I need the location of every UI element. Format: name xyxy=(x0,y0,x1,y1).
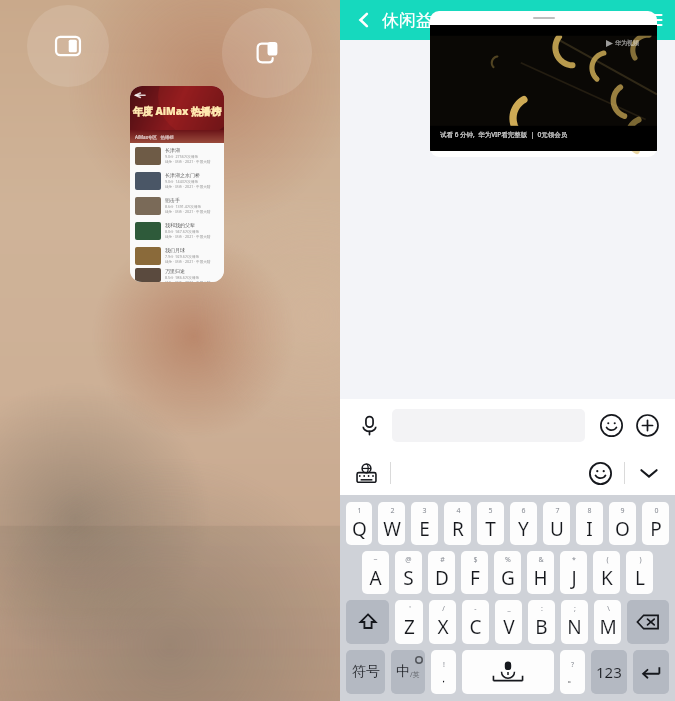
button[interactable]: K xyxy=(593,551,620,594)
staticText: U xyxy=(550,516,564,542)
button[interactable]: Switch keyboard xyxy=(350,457,382,489)
staticText: 6 xyxy=(521,506,526,516)
staticText: # xyxy=(440,555,445,565)
button[interactable]: Q xyxy=(346,502,372,545)
button[interactable]: Z xyxy=(395,600,423,644)
staticText: A xyxy=(369,565,382,591)
button[interactable]: P xyxy=(642,502,669,545)
staticText: ( xyxy=(606,555,609,565)
staticText: 9.0分 1443万次播放 xyxy=(165,179,199,184)
button[interactable]: T xyxy=(477,502,504,545)
staticText: 5 xyxy=(488,506,493,516)
button[interactable]: A xyxy=(362,551,389,594)
button[interactable]: Emoji keyboard xyxy=(584,457,616,489)
staticText: P xyxy=(650,516,662,542)
staticText: Q xyxy=(352,516,367,542)
staticText: 长津湖 xyxy=(165,147,180,153)
staticText: 华为视频 xyxy=(615,39,639,47)
button[interactable]: N xyxy=(561,600,588,644)
staticText: @ xyxy=(405,555,412,565)
staticText: * xyxy=(572,555,576,565)
staticText: 0 xyxy=(654,506,659,516)
staticText: ' xyxy=(409,604,411,614)
staticText: N xyxy=(567,614,582,640)
button[interactable]: M xyxy=(594,600,621,644)
staticText: 1 xyxy=(357,506,362,516)
button[interactable]: X xyxy=(429,600,456,644)
button[interactable]: E xyxy=(411,502,438,545)
staticText: & xyxy=(538,555,544,565)
staticText: ; xyxy=(574,604,576,614)
staticText: Z xyxy=(404,614,415,640)
staticText: 战争 · 历史 · 2021 · 中国大陆 xyxy=(165,184,211,189)
button[interactable]: Y xyxy=(510,502,537,545)
staticText: ! xyxy=(443,660,445,670)
staticText: \ xyxy=(607,604,610,614)
button[interactable]: U xyxy=(543,502,570,545)
staticText: 符号 xyxy=(352,663,380,681)
button[interactable]: O xyxy=(609,502,636,545)
button[interactable]: 中英切换 xyxy=(391,650,425,694)
button[interactable]: V xyxy=(495,600,522,644)
staticText: 狙击手 xyxy=(165,197,180,203)
staticText: X xyxy=(437,614,449,640)
staticText: T xyxy=(485,516,496,542)
button[interactable]: More xyxy=(631,409,663,441)
button[interactable]: L xyxy=(626,551,653,594)
button[interactable]: Voice input xyxy=(352,408,386,442)
button[interactable]: I xyxy=(576,502,603,545)
staticText: 7.9分 929.6万次播放 xyxy=(165,254,200,259)
button[interactable]: Shift xyxy=(346,600,389,644)
staticText: F xyxy=(470,565,480,591)
button[interactable]: Hide keyboard xyxy=(633,457,665,489)
staticText: 。 xyxy=(567,671,578,685)
staticText: K xyxy=(601,565,613,591)
button[interactable]: Space xyxy=(462,650,554,694)
button[interactable]: Back xyxy=(350,6,378,34)
staticText: : xyxy=(541,604,543,614)
staticText: 8.6分 1391.4万次播放 xyxy=(165,204,202,209)
button[interactable]: H xyxy=(527,551,554,594)
button[interactable]: Comma xyxy=(431,650,456,694)
staticText: % xyxy=(505,555,511,565)
button[interactable]: F xyxy=(461,551,488,594)
staticText: 战争 · 历史 · 2021 · 中国大陆 xyxy=(165,259,211,264)
staticText: 战争 · 历史 · 2021 · 中国大陆 xyxy=(165,234,211,239)
staticText: AiMax专区 热播榜 xyxy=(135,134,175,140)
staticText: E xyxy=(419,516,430,542)
button[interactable]: J xyxy=(560,551,587,594)
staticText: W xyxy=(383,516,401,542)
button[interactable]: D xyxy=(428,551,455,594)
button[interactable]: Floating window xyxy=(222,8,312,98)
button[interactable]: 符号 xyxy=(346,650,385,694)
staticText: 中 xyxy=(396,663,410,681)
button[interactable]: Video preview xyxy=(430,11,657,157)
staticText: 2 xyxy=(390,506,395,516)
button[interactable]: W xyxy=(378,502,405,545)
button[interactable]: S xyxy=(395,551,422,594)
button[interactable]: Period xyxy=(560,650,585,694)
staticText: 我们月球 xyxy=(165,247,185,253)
staticText: 休闲益智 xyxy=(382,10,450,31)
staticText: I xyxy=(586,516,593,542)
button[interactable]: B xyxy=(528,600,555,644)
staticText: 7 xyxy=(555,506,560,516)
staticText: 9.0分 2756万次播放 xyxy=(165,154,199,159)
staticText: 4 xyxy=(456,506,461,516)
staticText: Y xyxy=(518,516,529,542)
button[interactable]: 123 xyxy=(591,650,627,694)
button[interactable]: R xyxy=(444,502,471,545)
button[interactable]: Emoji xyxy=(595,409,627,441)
button[interactable]: Split screen xyxy=(27,5,109,87)
button[interactable]: Recent app preview xyxy=(130,86,224,282)
button[interactable]: Menu xyxy=(639,5,669,35)
button[interactable]: G xyxy=(494,551,521,594)
button[interactable]: Backspace xyxy=(627,600,669,644)
staticText: ~ xyxy=(373,555,378,565)
staticText: ， xyxy=(438,671,449,685)
button[interactable]: Enter xyxy=(633,650,669,694)
staticText: 我和我的父辈 xyxy=(165,222,195,228)
button[interactable]: C xyxy=(462,600,489,644)
staticText: 3 xyxy=(422,506,427,516)
